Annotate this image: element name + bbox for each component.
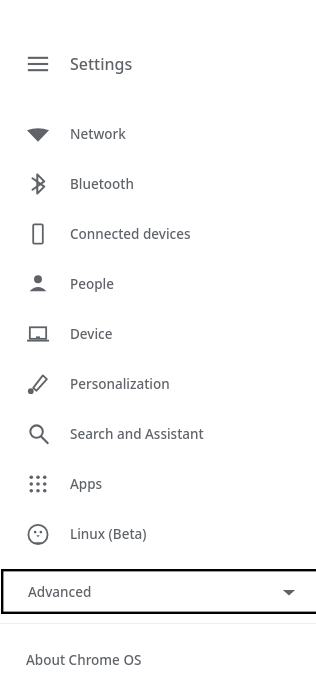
staticText: Apps [70,475,103,493]
button[interactable]: Linux (Beta) [0,509,316,559]
staticText: Bluetooth [70,175,134,193]
staticText: Search and Assistant [70,425,204,443]
button[interactable]: People [0,259,316,309]
staticText: Connected devices [70,225,191,243]
staticText: Settings [70,53,133,75]
button[interactable]: Network [0,109,316,159]
staticText: Advanced [28,583,92,601]
button[interactable]: Apps [0,459,316,509]
button[interactable]: Connected devices [0,209,316,259]
button[interactable]: Device [0,309,316,359]
button[interactable]: Open navigation menu [16,44,60,84]
button[interactable]: Bluetooth [0,159,316,209]
button[interactable]: Advanced [1,569,316,614]
staticText: People [70,275,114,293]
staticText: Linux (Beta) [70,525,147,543]
staticText: About Chrome OS [26,651,142,669]
button[interactable]: Personalization [0,359,316,409]
staticText: Network [70,125,126,143]
button[interactable]: Search and Assistant [0,409,316,459]
staticText: Device [70,325,113,343]
button[interactable]: About Chrome OS [0,636,316,684]
button[interactable]: Open navigation menu [0,44,316,84]
staticText: Personalization [70,375,170,393]
